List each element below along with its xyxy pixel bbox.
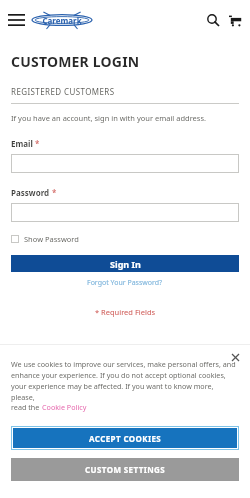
staticText: CUSTOMER LOGIN <box>11 52 140 71</box>
button[interactable]: Cookie Policy <box>42 402 87 412</box>
button[interactable]: Sign In <box>11 255 239 272</box>
staticText: Sign In <box>110 258 141 270</box>
button[interactable] <box>11 154 239 173</box>
staticText: CUSTOM SETTINGS <box>85 464 166 475</box>
staticText: We use cookies to improve our services, … <box>11 359 239 402</box>
staticText: Email <box>11 138 33 149</box>
button[interactable]: Menu <box>3 7 29 33</box>
button[interactable]: Cart <box>225 10 245 30</box>
staticText: * <box>52 187 57 198</box>
staticText: Show Password <box>24 234 79 244</box>
staticText: If you have an account, sign in with you… <box>11 113 207 123</box>
staticText: Cookie Policy <box>42 402 87 412</box>
staticText: REGISTERED CUSTOMERS <box>11 86 115 97</box>
button[interactable] <box>11 203 239 222</box>
staticText: Password <box>11 187 50 198</box>
staticText: * Required Fields <box>95 307 156 317</box>
button[interactable]: ACCEPT COOKIES <box>13 428 237 448</box>
staticText: Caremark <box>42 15 82 26</box>
staticText: read the <box>11 402 42 412</box>
staticText: ACCEPT COOKIES <box>89 433 162 444</box>
button[interactable]: CUSTOM SETTINGS <box>11 458 239 481</box>
staticText: Forgot Your Password? <box>87 278 163 288</box>
button[interactable]: Search <box>203 10 223 30</box>
button[interactable]: Close <box>228 350 242 364</box>
staticText: * <box>35 138 40 149</box>
button[interactable]: Forgot Your Password? <box>87 278 163 288</box>
button[interactable]: Show Password <box>11 234 79 244</box>
